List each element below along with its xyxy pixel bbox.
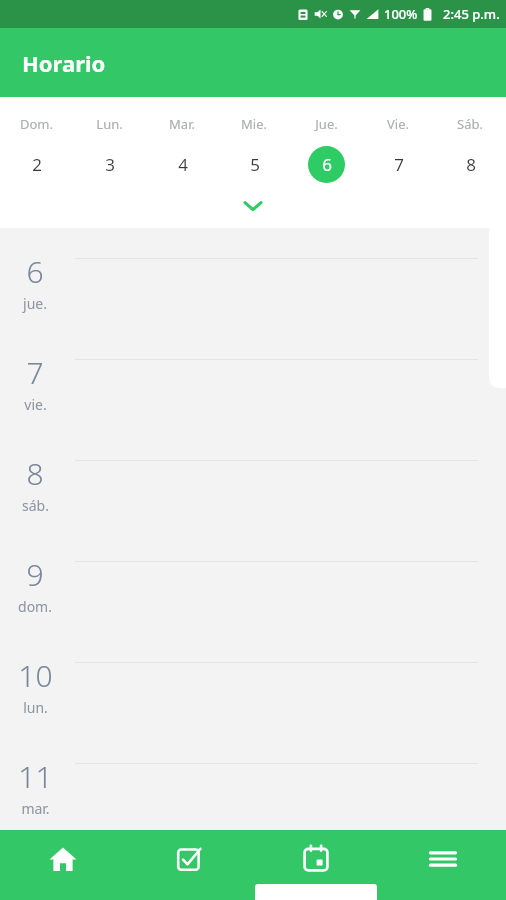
staticText: 7 (26, 352, 44, 393)
button[interactable]: Mar. (146, 115, 218, 183)
button[interactable]: Jue. (290, 115, 362, 183)
staticText: 5 (250, 153, 260, 176)
staticText: 2 (32, 153, 42, 176)
staticText: Dom. (20, 115, 53, 133)
staticText: Lun. (96, 115, 123, 133)
button[interactable]: Dom. (0, 115, 73, 183)
staticText: dom. (18, 597, 52, 616)
staticText: 4 (178, 153, 188, 176)
staticText: 11 (18, 756, 53, 797)
staticText: Mar. (169, 115, 195, 133)
staticText: vie. (24, 395, 47, 414)
staticText: 2:45 p.m. (443, 5, 500, 23)
staticText: Jue. (315, 115, 338, 133)
button[interactable]: Menú (379, 830, 506, 900)
staticText: Vie. (387, 115, 409, 133)
staticText: jue. (23, 294, 47, 313)
staticText: 7 (394, 153, 404, 176)
staticText: 6 (26, 251, 44, 292)
staticText: Sáb. (457, 115, 483, 133)
staticText: Horario (22, 48, 106, 78)
button[interactable]: Mie. (218, 115, 290, 183)
staticText: lun. (23, 698, 48, 717)
staticText: 100% (384, 5, 418, 23)
button[interactable]: Expandir calendario (233, 193, 273, 219)
button[interactable]: Horario (252, 830, 379, 900)
staticText: 10 (18, 655, 53, 696)
button[interactable]: Inicio (0, 830, 126, 900)
button[interactable]: 8 (0, 450, 506, 551)
button[interactable]: 10 (0, 652, 506, 753)
staticText: 6 (322, 153, 332, 176)
button[interactable]: Vie. (362, 115, 434, 183)
button[interactable]: Lun. (73, 115, 146, 183)
staticText: 3 (105, 153, 115, 176)
staticText: mar. (21, 799, 50, 818)
staticText: sáb. (22, 496, 49, 515)
button[interactable]: 6 (0, 248, 506, 349)
staticText: 9 (26, 554, 44, 595)
button[interactable]: 7 (0, 349, 506, 450)
staticText: 8 (466, 153, 476, 176)
button[interactable]: Tareas (126, 830, 252, 900)
button[interactable]: 9 (0, 551, 506, 652)
button[interactable]: 11 (0, 753, 506, 830)
staticText: 8 (26, 453, 44, 494)
button[interactable]: Sáb. (434, 115, 506, 183)
staticText: Mie. (241, 115, 267, 133)
